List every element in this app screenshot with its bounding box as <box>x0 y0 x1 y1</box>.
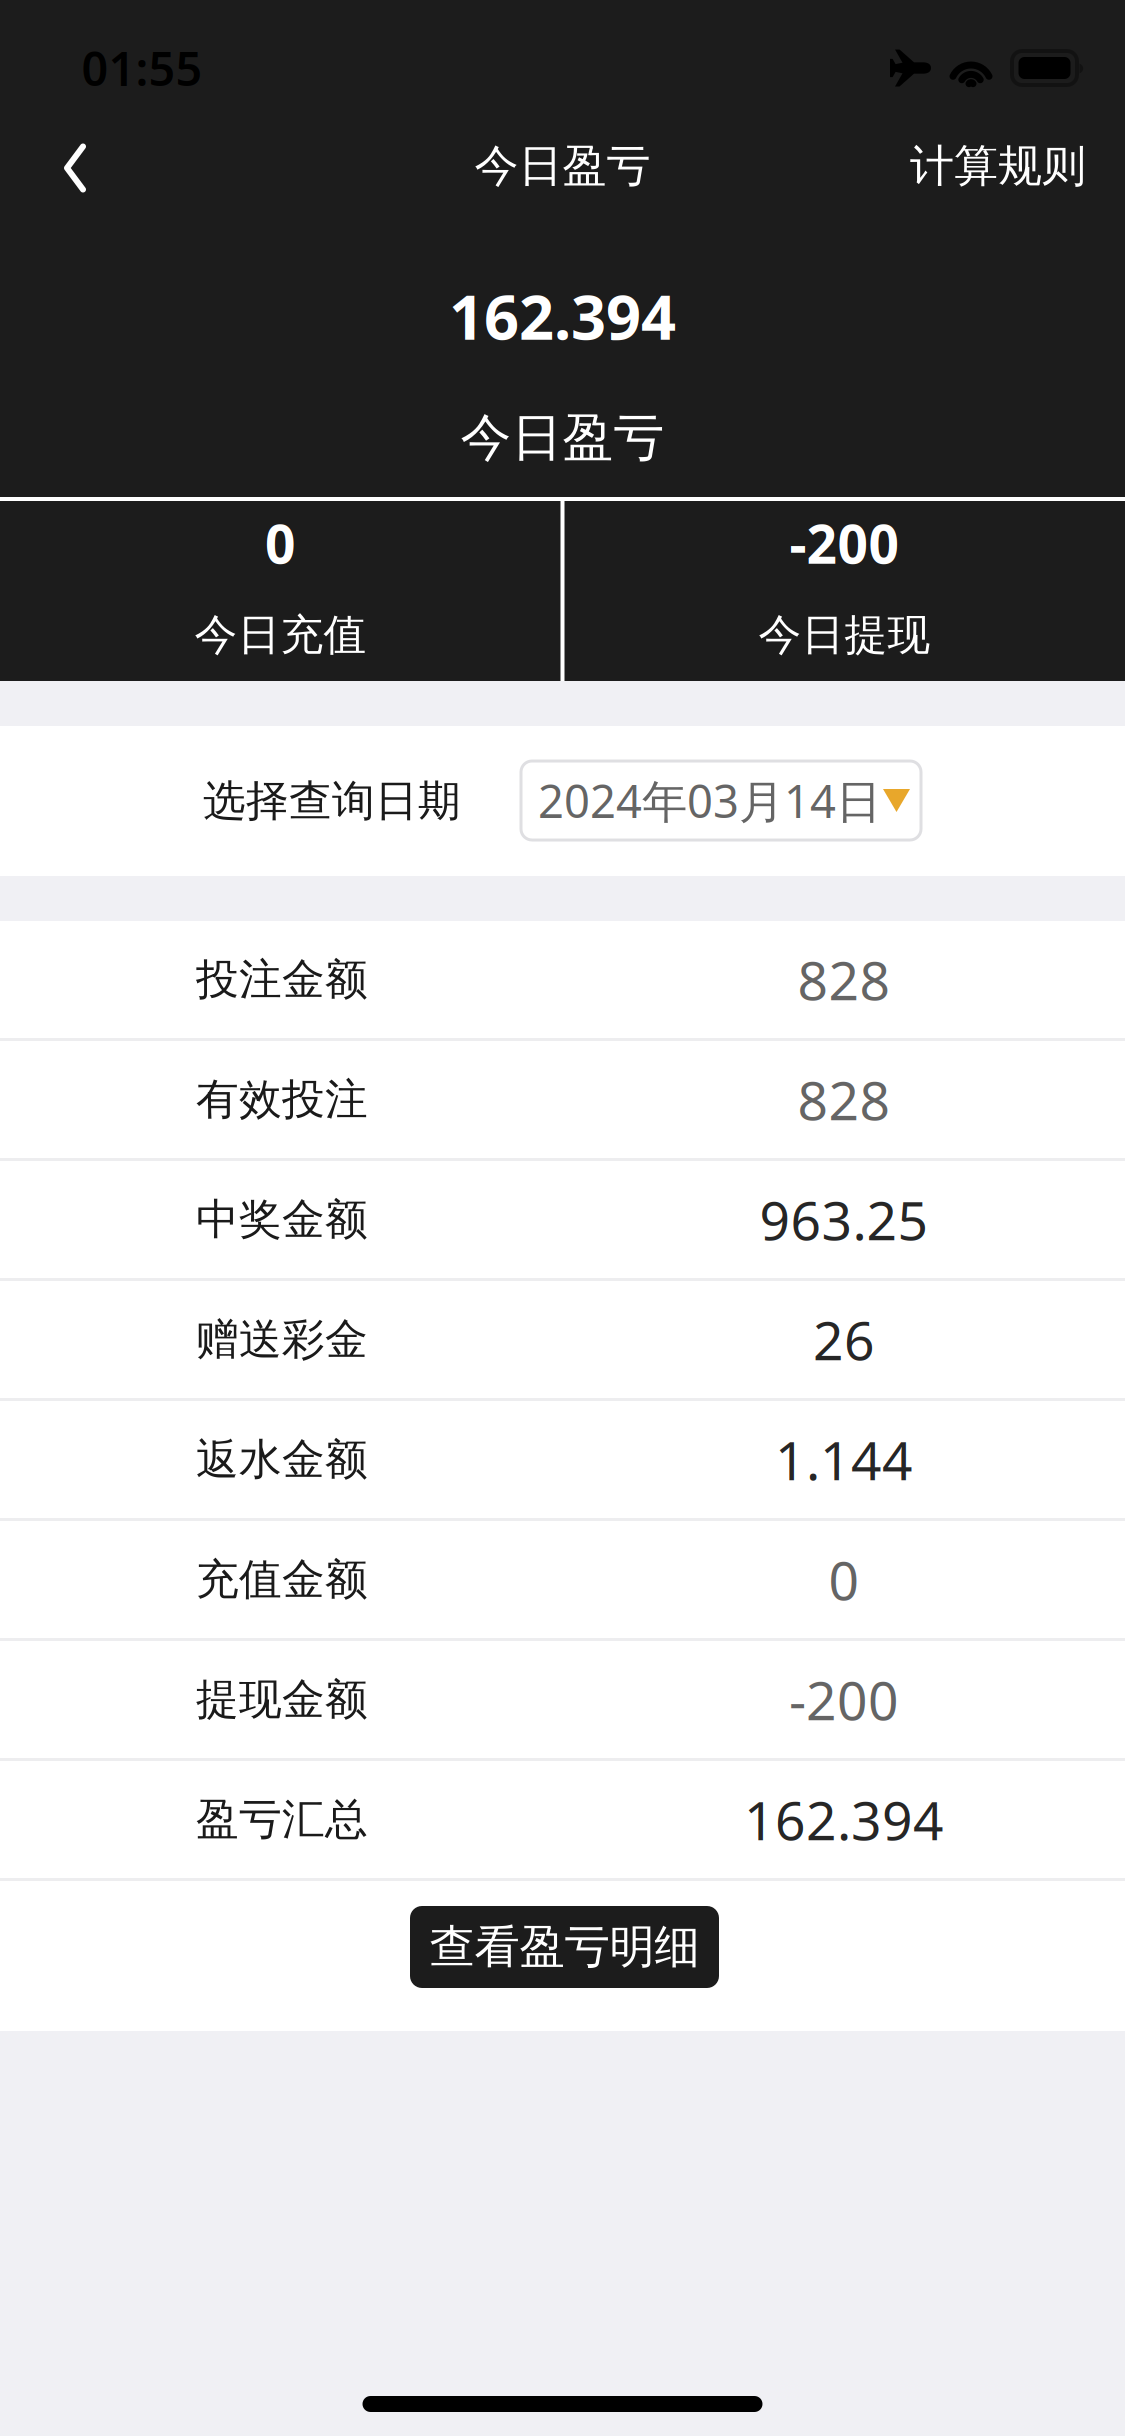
staticText: 投注金额 <box>196 953 368 1006</box>
staticText: 01:55 <box>81 36 202 100</box>
staticText: 今日充值 <box>194 608 366 662</box>
staticText: 963.25 <box>759 1183 928 1256</box>
staticText: -200 <box>789 507 899 579</box>
staticText: 828 <box>797 1063 890 1136</box>
staticText: 2024年03月14日 <box>538 770 881 831</box>
staticText: 0 <box>828 1543 859 1616</box>
staticText: 提现金额 <box>196 1673 368 1726</box>
staticText: 盈亏汇总 <box>196 1793 368 1846</box>
staticText: -200 <box>789 1663 899 1736</box>
staticText: 中奖金额 <box>196 1193 368 1246</box>
staticText: 计算规则 <box>910 138 1086 194</box>
staticText: 今日盈亏 <box>460 406 664 470</box>
staticText: 查看盈亏明细 <box>429 1918 699 1975</box>
staticText: 选择查询日期 <box>203 774 461 828</box>
staticText: 返水金额 <box>196 1433 368 1486</box>
staticText: 0 <box>265 507 296 579</box>
staticText: 今日盈亏 <box>474 138 650 194</box>
staticText: 162.394 <box>449 274 676 358</box>
button[interactable]: 2024年03月14日 <box>0 726 400 805</box>
staticText: 828 <box>797 943 890 1016</box>
staticText: 今日提现 <box>758 608 930 662</box>
staticText: 赠送彩金 <box>196 1313 368 1366</box>
staticText: 162.394 <box>744 1783 944 1856</box>
staticText: 26 <box>813 1303 875 1376</box>
staticText: 1.144 <box>775 1423 913 1496</box>
button[interactable]: 计算规则 <box>880 118 1125 214</box>
button[interactable]: 返回 <box>0 118 150 214</box>
staticText: 有效投注 <box>196 1073 368 1126</box>
staticText: 充值金额 <box>196 1553 368 1606</box>
